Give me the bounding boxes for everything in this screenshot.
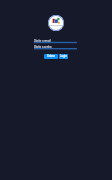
button[interactable] [44, 54, 58, 59]
button[interactable] [59, 54, 68, 59]
other: App logo [48, 15, 64, 31]
